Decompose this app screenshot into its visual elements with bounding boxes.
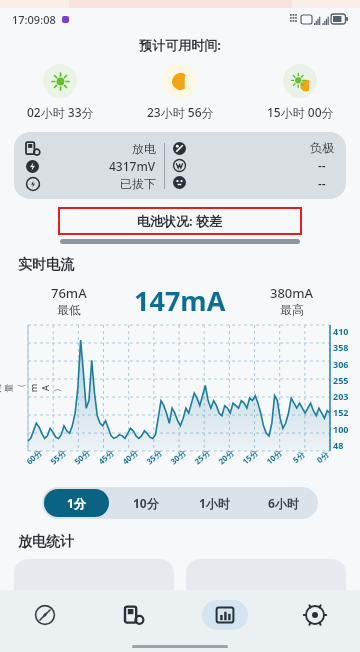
staticText: 实时电流	[18, 256, 74, 274]
staticText: 15分	[240, 446, 260, 467]
other: Screen on estimate	[43, 64, 77, 98]
staticText: --	[318, 175, 326, 191]
staticText: 电池状况: 较差	[137, 212, 223, 230]
staticText: 255	[333, 374, 349, 386]
staticText: 0分	[314, 448, 331, 465]
staticText: 48	[333, 439, 344, 451]
button[interactable]: Screen on estimate	[0, 64, 120, 120]
button[interactable]: 10分	[113, 489, 178, 517]
staticText: 放电统计	[18, 533, 74, 551]
staticText: 最低	[57, 302, 81, 317]
staticText: 25分	[192, 446, 212, 467]
button[interactable]: Mixed use estimate	[240, 64, 360, 120]
staticText: 20分	[216, 446, 236, 467]
staticText: 负极	[310, 140, 334, 155]
staticText: 40分	[120, 446, 140, 467]
staticText: 10分	[133, 495, 159, 511]
staticText: 23小时 56分	[147, 104, 214, 120]
staticText: 6小时	[268, 495, 299, 511]
button[interactable]: 放电	[14, 132, 346, 199]
staticText: --	[318, 157, 326, 173]
staticText: 4317mV	[109, 158, 156, 174]
staticText: 152	[333, 406, 349, 418]
button[interactable]: Standby estimate	[120, 64, 240, 120]
staticText: 380mA	[270, 284, 314, 302]
staticText: 15小时 00分	[267, 104, 334, 120]
staticText: 1小时	[199, 495, 230, 511]
button[interactable]: 1小时	[182, 489, 247, 517]
button[interactable]: Battery overview	[0, 590, 90, 640]
staticText: 35分	[144, 446, 164, 467]
staticText: 50分	[72, 446, 92, 467]
staticText: 30分	[168, 446, 188, 467]
staticText: 45分	[96, 446, 116, 467]
staticText: 10分	[264, 446, 284, 467]
button[interactable]: 1分	[44, 489, 109, 517]
staticText: 17:09:08	[12, 12, 56, 27]
staticText: 使用量（mA）	[0, 381, 63, 395]
staticText: 306	[333, 358, 349, 370]
staticText: 预计可用时间:	[0, 36, 360, 54]
other: Standby estimate	[163, 64, 197, 98]
staticText: 100	[333, 423, 349, 435]
other: Mixed use estimate	[283, 64, 317, 98]
staticText: 放电	[132, 141, 156, 156]
staticText: 410	[333, 325, 349, 337]
staticText: 02小时 33分	[27, 104, 94, 120]
staticText: 203	[333, 390, 349, 402]
button[interactable]: Discharge stats	[180, 590, 270, 640]
staticText: 已拔下	[120, 176, 156, 191]
staticText: 5分	[290, 448, 307, 465]
staticText: 最高	[280, 302, 304, 317]
button[interactable]: 电池状况: 较差	[58, 207, 302, 235]
staticText: 76mA	[51, 284, 87, 302]
button[interactable]: Add battery log	[90, 590, 180, 640]
staticText: 147mA	[134, 282, 226, 319]
button[interactable]: Settings	[270, 590, 360, 640]
staticText: 1分	[67, 495, 86, 511]
staticText: 60分	[24, 446, 44, 467]
staticText: 55分	[48, 446, 68, 467]
staticText: 358	[333, 341, 349, 353]
button[interactable]: 6小时	[251, 489, 316, 517]
